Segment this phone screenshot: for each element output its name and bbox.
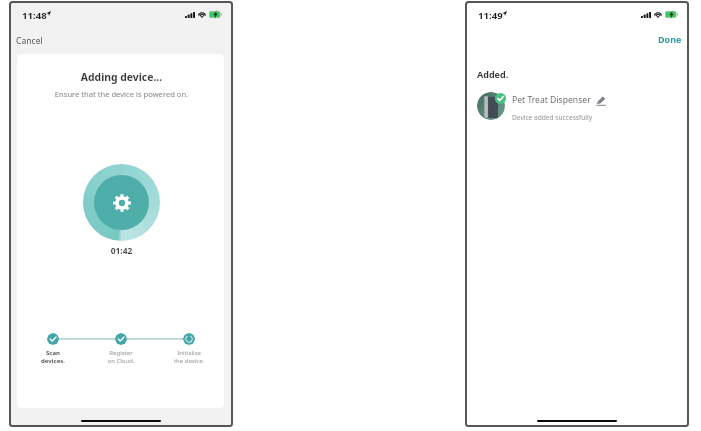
staticText: Device added successfully: [512, 113, 593, 122]
button[interactable]: Done: [653, 30, 687, 48]
staticText: Register on Cloud.: [91, 349, 151, 365]
button[interactable]: Cancel: [11, 32, 48, 50]
staticText: Cancel: [16, 35, 43, 47]
staticText: Done: [658, 33, 682, 45]
staticText: Added.: [477, 68, 509, 80]
staticText: 11:48: [22, 9, 47, 22]
staticText: Scan devices.: [23, 349, 83, 365]
button[interactable]: Rename device: [596, 96, 606, 106]
staticText: Adding device...: [18, 70, 224, 84]
button[interactable]: Register on Cloud: [115, 333, 127, 345]
button[interactable]: Pet Treat Dispenser: [474, 88, 688, 116]
button[interactable]: Scan devices: [47, 333, 59, 345]
staticText: 01:42: [18, 245, 224, 256]
staticText: Ensure that the device is powered on.: [18, 89, 224, 99]
button[interactable]: Initialize the device: [183, 333, 195, 345]
staticText: Pet Treat Dispenser: [512, 94, 591, 106]
staticText: Initialize the device.: [159, 349, 219, 365]
staticText: 11:49: [478, 9, 503, 22]
